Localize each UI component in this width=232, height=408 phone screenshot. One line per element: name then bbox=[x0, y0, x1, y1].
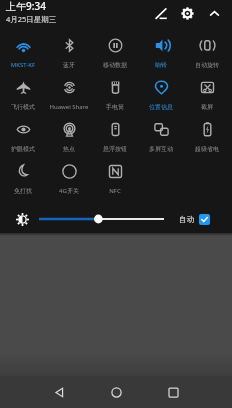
button[interactable]: 多屏互动 bbox=[138, 116, 184, 158]
button[interactable]: 护眼模式 bbox=[0, 116, 46, 158]
staticText: 4G开关 bbox=[46, 187, 92, 195]
button[interactable]: 热点 bbox=[46, 116, 92, 158]
staticText: 手电筒 bbox=[92, 103, 138, 111]
staticText: 4月25日星期三 bbox=[6, 14, 57, 24]
staticText: 自动旋转 bbox=[184, 61, 230, 69]
staticText: 免打扰 bbox=[0, 187, 46, 195]
button[interactable]: 悬浮按钮 bbox=[92, 116, 138, 158]
staticText: NFC bbox=[92, 187, 138, 195]
staticText: 上午9:34 bbox=[6, 0, 46, 13]
staticText: Huawei Share bbox=[46, 103, 92, 111]
button[interactable]: Huawei Share bbox=[46, 74, 92, 116]
button[interactable]: 超级省电 bbox=[184, 116, 230, 158]
button[interactable]: 移动数据 bbox=[92, 32, 138, 74]
staticText: 响铃 bbox=[138, 61, 184, 69]
button[interactable]: NFC bbox=[92, 158, 138, 200]
button[interactable]: Edit bbox=[147, 0, 174, 27]
button[interactable]: 自动旋转 bbox=[184, 32, 230, 74]
staticText: 截屏 bbox=[184, 103, 230, 111]
button[interactable]: 截屏 bbox=[184, 74, 230, 116]
staticText: 悬浮按钮 bbox=[92, 145, 138, 153]
button[interactable]: Auto brightness bbox=[199, 214, 210, 225]
staticText: 护眼模式 bbox=[0, 145, 46, 153]
button[interactable]: 手电筒 bbox=[92, 74, 138, 116]
button[interactable]: Home bbox=[101, 377, 131, 407]
button[interactable]: Recents bbox=[158, 377, 188, 407]
button[interactable]: 响铃 bbox=[138, 32, 184, 74]
button[interactable]: 蓝牙 bbox=[46, 32, 92, 74]
staticText: MKST-KF bbox=[0, 61, 46, 69]
staticText: 超级省电 bbox=[184, 145, 230, 153]
staticText: 位置信息 bbox=[138, 103, 184, 111]
button[interactable]: 位置信息 bbox=[138, 74, 184, 116]
button[interactable]: 飞行模式 bbox=[0, 74, 46, 116]
other: Brightness bbox=[16, 213, 29, 226]
staticText: 移动数据 bbox=[92, 61, 138, 69]
staticText: 蓝牙 bbox=[46, 61, 92, 69]
button[interactable]: 4G开关 bbox=[46, 158, 92, 200]
button[interactable]: Collapse bbox=[201, 0, 228, 27]
staticText: 热点 bbox=[46, 145, 92, 153]
button[interactable]: MKST-KF bbox=[0, 32, 46, 74]
button[interactable]: Back bbox=[44, 377, 74, 407]
staticText: 飞行模式 bbox=[0, 103, 46, 111]
staticText: 自动 bbox=[179, 215, 194, 224]
button[interactable]: 免打扰 bbox=[0, 158, 46, 200]
button[interactable]: Brightness slider bbox=[34, 212, 169, 226]
button[interactable]: Settings bbox=[174, 0, 201, 27]
staticText: 多屏互动 bbox=[138, 145, 184, 153]
